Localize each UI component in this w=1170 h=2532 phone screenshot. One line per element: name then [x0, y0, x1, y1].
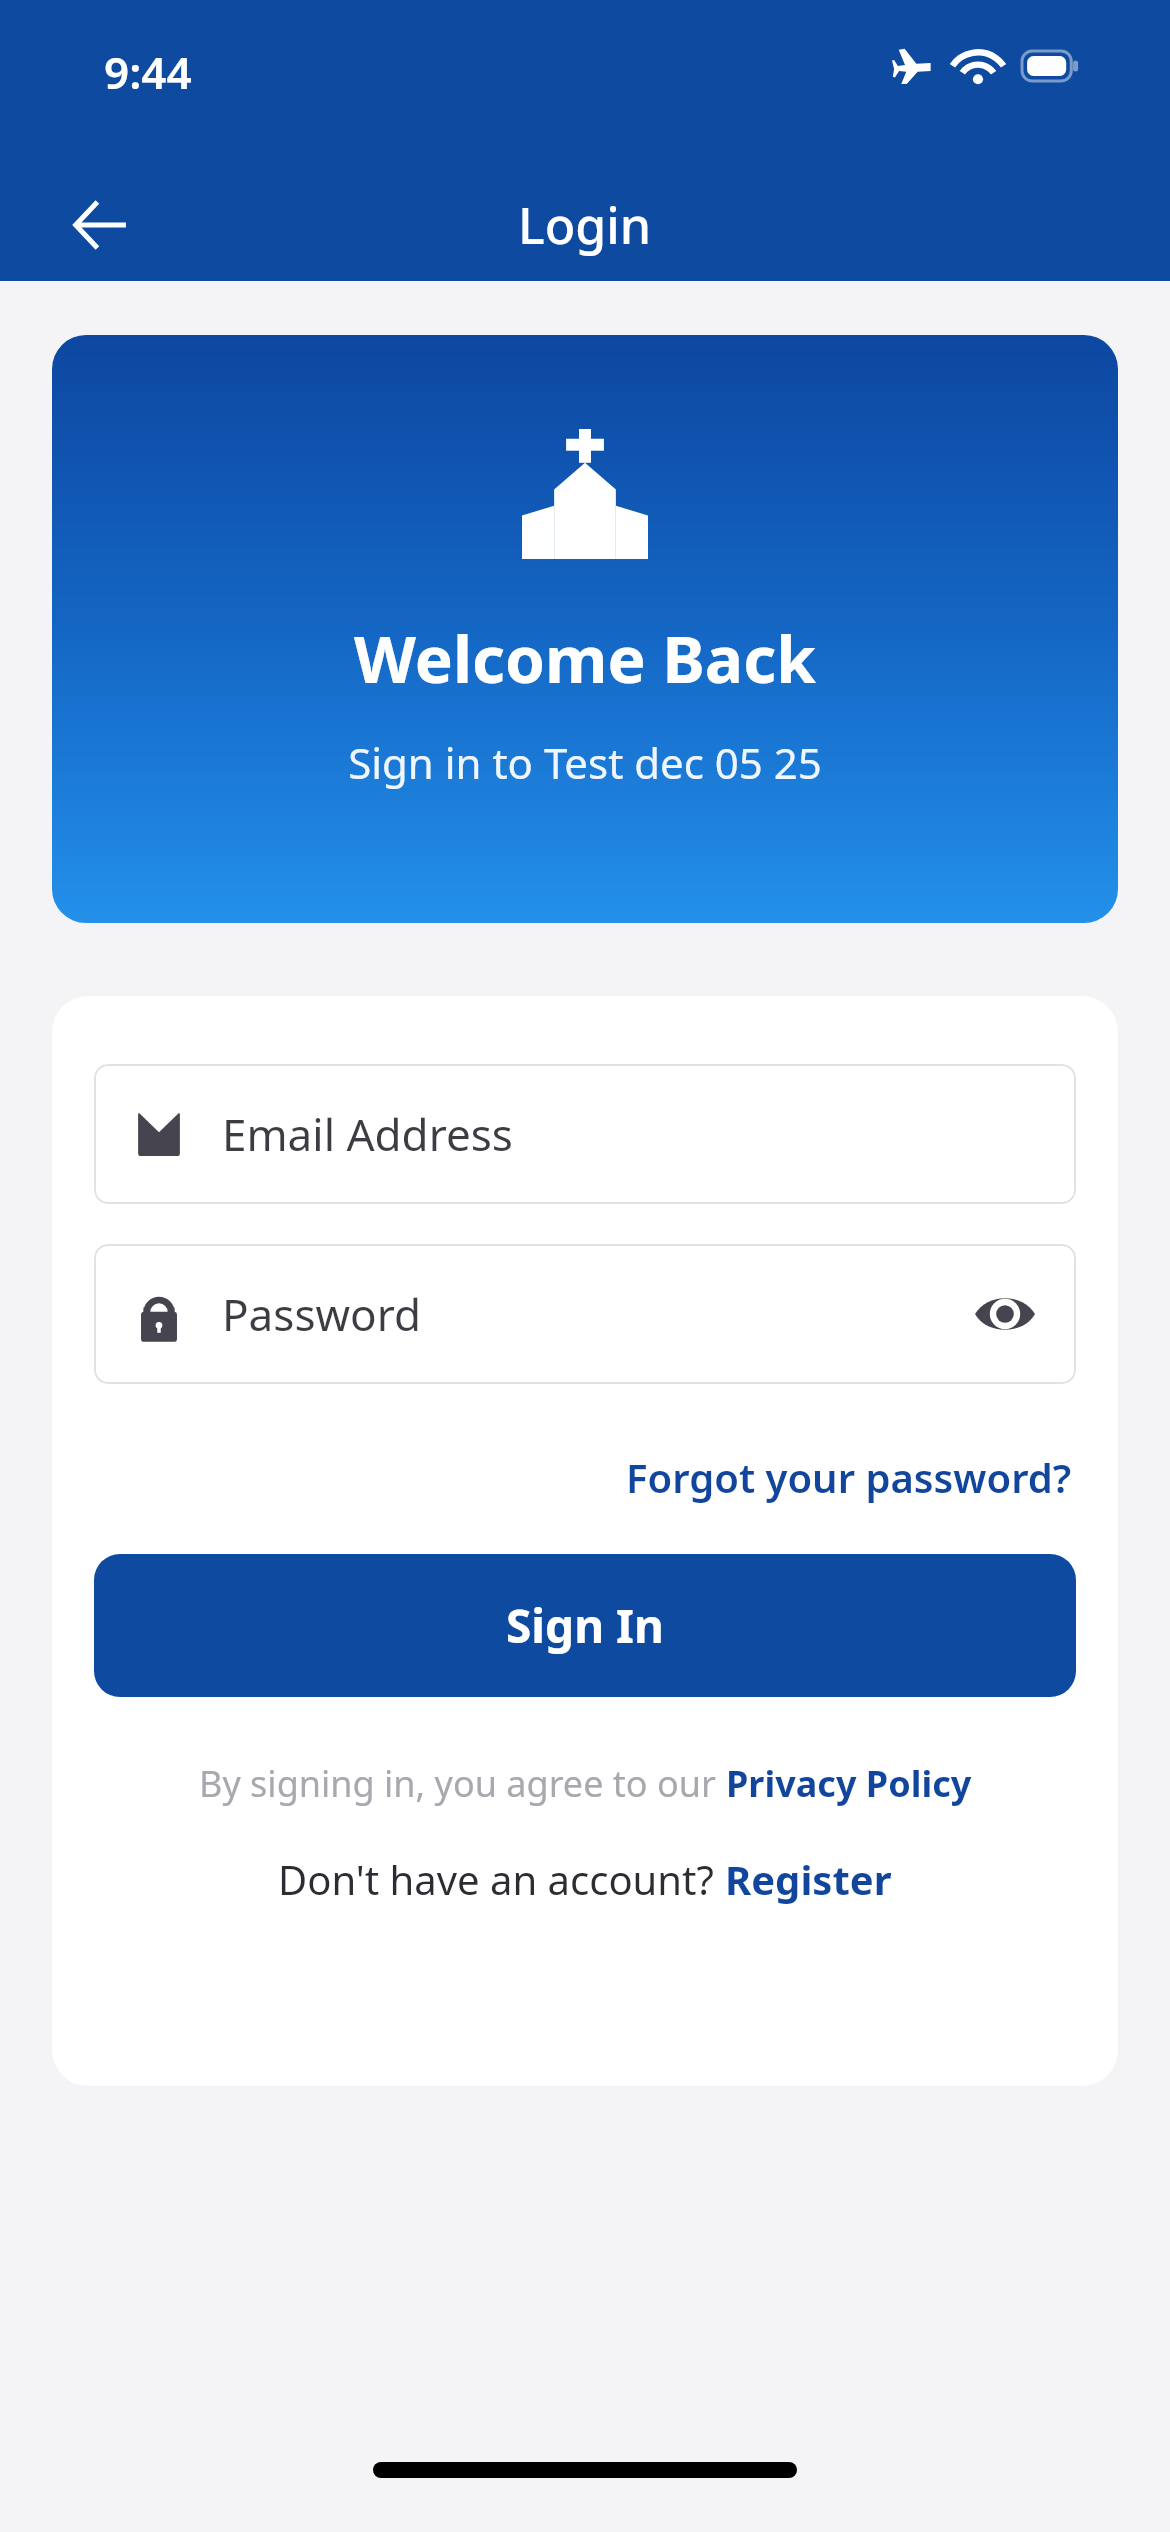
staticText: Sign In: [506, 1594, 664, 1657]
staticText: Forgot your password?: [626, 1450, 1072, 1504]
staticText: Email Address: [222, 1104, 513, 1164]
button[interactable]: Privacy Policy: [726, 1759, 972, 1808]
button[interactable]: Show password: [970, 1279, 1040, 1349]
staticText: Password: [222, 1284, 422, 1344]
staticText: Privacy Policy: [726, 1759, 972, 1808]
button[interactable]: Sign In: [94, 1554, 1076, 1697]
button[interactable]: Forgot your password?: [622, 1444, 1076, 1510]
staticText: Sign in to Test dec 05 25: [348, 734, 822, 791]
staticText: Welcome Back: [354, 615, 816, 702]
button[interactable]: Password: [94, 1244, 1076, 1384]
staticText: Register: [725, 1852, 892, 1906]
button[interactable]: Back: [56, 181, 144, 269]
staticText: Don't have an account?: [278, 1852, 725, 1906]
button[interactable]: Welcome Back: [52, 335, 1118, 923]
staticText: Login: [518, 191, 652, 259]
staticText: By signing in, you agree to our: [199, 1759, 726, 1808]
button[interactable]: Email Address: [94, 1064, 1076, 1204]
button[interactable]: Register: [725, 1852, 892, 1906]
staticText: 9:44: [104, 42, 192, 102]
